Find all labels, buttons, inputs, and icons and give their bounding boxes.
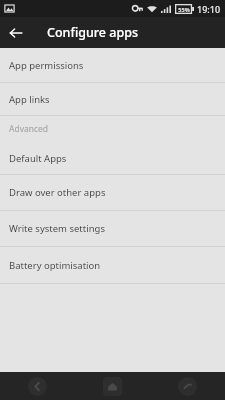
button[interactable]: App permissions [0, 48, 225, 82]
staticText: Battery optimisation [9, 259, 101, 272]
staticText: App permissions [9, 59, 84, 72]
staticText: App links [9, 93, 50, 106]
staticText: Draw over other apps [9, 186, 106, 199]
button[interactable]: App links [0, 83, 225, 115]
staticText: 55% [178, 6, 190, 13]
staticText: Configure apps [47, 24, 139, 41]
staticText: Advanced [9, 123, 49, 135]
staticText: 19:10 [197, 3, 221, 15]
button[interactable]: Home [75, 372, 150, 400]
staticText: Default Apps [9, 152, 67, 165]
button[interactable]: Back [0, 372, 75, 400]
staticText: Write system settings [9, 222, 105, 235]
button[interactable]: Recent apps [150, 372, 225, 400]
button[interactable]: Write system settings [0, 211, 225, 246]
button[interactable]: Battery optimisation [0, 247, 225, 283]
button[interactable]: Back [0, 17, 31, 48]
button[interactable]: Draw over other apps [0, 175, 225, 210]
button[interactable]: Default Apps [0, 142, 225, 174]
